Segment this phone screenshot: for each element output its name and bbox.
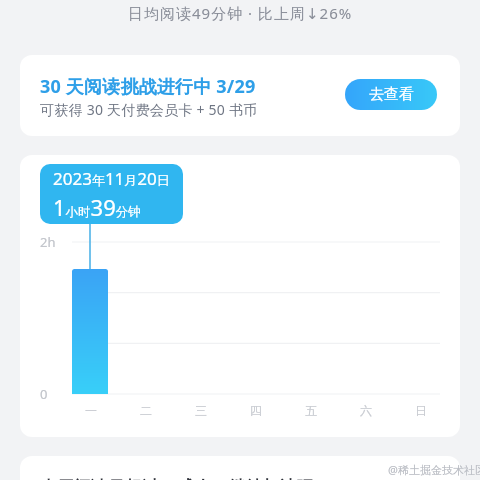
button[interactable]: 本周阅读量超过 9 成人，继续加油吧	[20, 456, 460, 480]
staticText: 2h	[40, 233, 56, 251]
button[interactable]: 去查看	[345, 79, 437, 110]
staticText: 三	[195, 403, 207, 418]
staticText: 去查看	[369, 85, 414, 104]
staticText: 30 天阅读挑战进行中 3/29	[40, 74, 256, 99]
staticText: 日均阅读49分钟 · 比上周↓26%	[128, 3, 353, 23]
button[interactable]: 周一阅读时长 1 小时 39 分钟	[72, 269, 108, 394]
staticText: 日	[415, 403, 427, 418]
staticText: 0	[40, 385, 48, 403]
staticText: 四	[250, 403, 262, 418]
staticText: 本周阅读量超过 9 成人，继续加油吧	[40, 475, 314, 480]
button[interactable]: 2023年11月20日	[40, 164, 183, 224]
staticText: 1小时39分钟	[53, 192, 141, 222]
staticText: 五	[305, 403, 317, 418]
staticText: 二	[140, 403, 152, 418]
button[interactable]: 30 天阅读挑战进行中 3/29	[20, 55, 460, 136]
staticText: 一	[85, 403, 97, 418]
staticText: 六	[360, 403, 372, 418]
staticText: 2023年11月20日	[53, 167, 170, 190]
staticText: @稀土掘金技术社区	[388, 462, 480, 477]
staticText: 可获得 30 天付费会员卡 + 50 书币	[40, 100, 258, 119]
